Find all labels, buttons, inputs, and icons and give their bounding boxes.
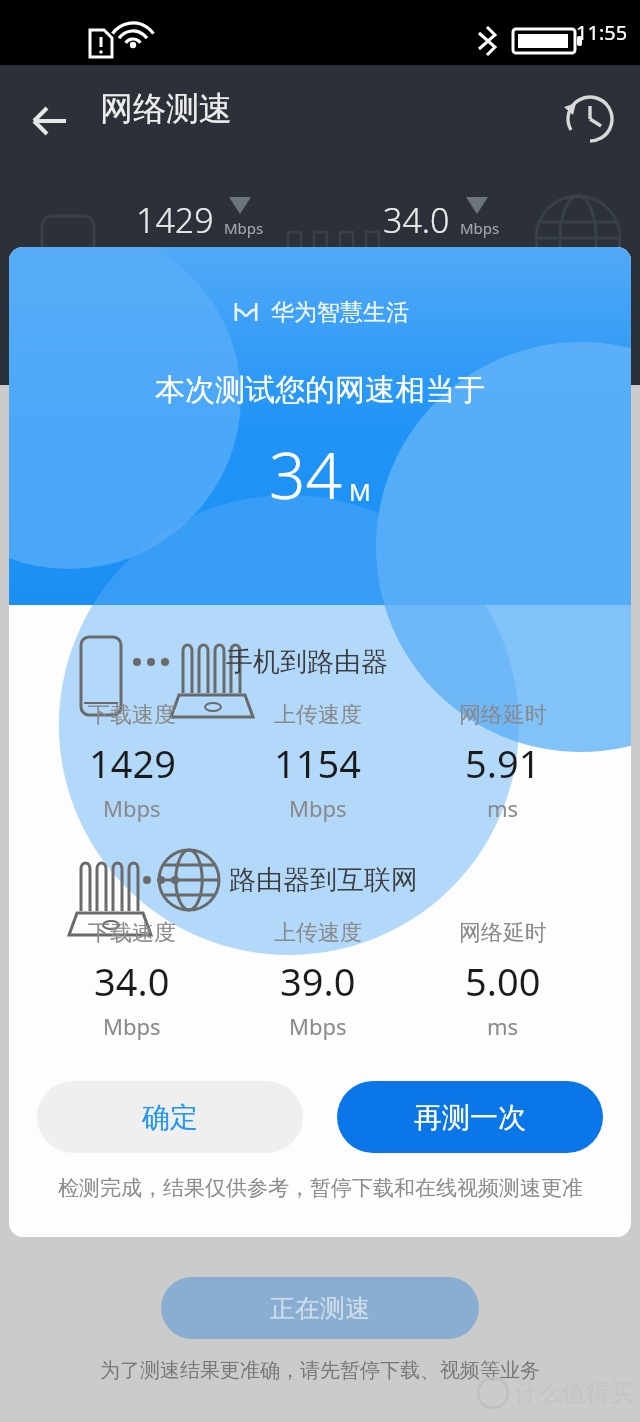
staticText: 为了测速结果更准确，请先暂停下载、视频等业务 (100, 1358, 540, 1383)
button[interactable]: 再测一次 (337, 1081, 603, 1153)
staticText: Mbps (289, 1011, 347, 1041)
staticText: 路由器到互联网 (229, 863, 418, 897)
staticText: ms (487, 793, 519, 823)
button[interactable]: Back (18, 89, 82, 153)
staticText: Mbps (460, 218, 500, 238)
staticText: 39.0 (280, 955, 356, 1007)
staticText: Mbps (289, 793, 347, 823)
staticText: 检测完成，结果仅供参考，暂停下载和在线视频测速更准 (58, 1175, 583, 1201)
staticText: 5.91 (465, 737, 541, 789)
staticText: 1429 (89, 737, 176, 789)
staticText: Mbps (224, 218, 264, 238)
staticText: 34.0 (383, 197, 450, 243)
staticText: 1429 (136, 197, 214, 243)
staticText: ms (487, 1011, 519, 1041)
staticText: 什么值得买 (514, 1378, 634, 1408)
staticText: 本次测试您的网速相当于 (155, 371, 485, 409)
staticText: 网络测速 (100, 88, 232, 130)
button[interactable]: History (558, 87, 622, 151)
button[interactable]: 确定 (37, 1081, 303, 1153)
staticText: 网络延时 (459, 919, 547, 947)
staticText: 上传速度 (274, 701, 362, 729)
staticText: 华为智慧生活 (271, 298, 409, 327)
button[interactable]: 正在测速 (161, 1277, 479, 1339)
staticText: 34.0 (94, 955, 170, 1007)
staticText: M (349, 475, 371, 508)
staticText: 下载速度 (88, 919, 176, 947)
staticText: 34 (269, 431, 343, 518)
staticText: 1154 (274, 737, 361, 789)
staticText: 确定 (142, 1100, 198, 1135)
staticText: Mbps (103, 793, 161, 823)
staticText: 下载速度 (88, 701, 176, 729)
staticText: 再测一次 (414, 1100, 526, 1135)
staticText: 网络延时 (459, 701, 547, 729)
staticText: 5.00 (465, 955, 541, 1007)
staticText: 上传速度 (274, 919, 362, 947)
staticText: 正在测速 (270, 1293, 370, 1324)
staticText: 手机到路由器 (226, 645, 388, 679)
staticText: 11:55 (576, 19, 628, 46)
staticText: Mbps (103, 1011, 161, 1041)
